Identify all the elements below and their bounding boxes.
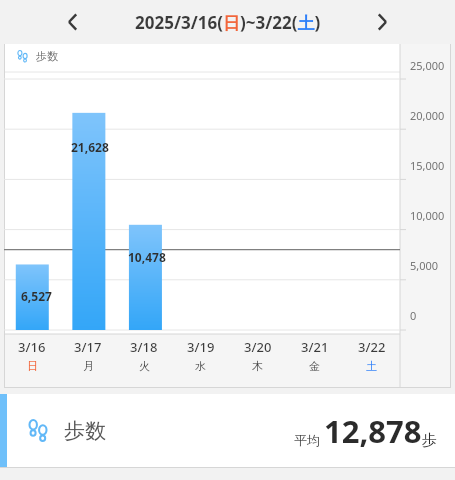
staticText: 歩数: [36, 49, 58, 63]
button[interactable]: 歩数: [0, 394, 455, 468]
staticText: 土: [366, 359, 377, 373]
staticText: 3/16: [18, 338, 46, 356]
staticText: 12,878: [324, 410, 422, 452]
button[interactable]: 歩数: [16, 49, 58, 63]
staticText: 10,478: [128, 249, 166, 265]
staticText: 木: [252, 359, 263, 373]
staticText: 20,000: [410, 108, 445, 123]
staticText: 平均: [294, 432, 320, 448]
staticText: 3/20: [244, 338, 272, 356]
staticText: 3/18: [130, 338, 158, 356]
button[interactable]: Previous week: [56, 5, 90, 39]
staticText: 25,000: [410, 58, 445, 73]
staticText: 15,000: [410, 158, 445, 173]
staticText: 3/19: [187, 338, 215, 356]
staticText: 21,628: [71, 139, 109, 155]
staticText: 金: [309, 359, 320, 373]
staticText: 歩: [422, 431, 437, 450]
staticText: 2025/3/16(日)~3/22(土): [135, 11, 321, 34]
staticText: 歩数: [64, 418, 106, 444]
staticText: 3/21: [301, 338, 329, 356]
staticText: 3/22: [358, 338, 386, 356]
staticText: 日: [27, 359, 38, 373]
staticText: 10,000: [410, 208, 445, 223]
staticText: 水: [195, 359, 206, 373]
staticText: 0: [410, 308, 417, 323]
button[interactable]: Next week: [365, 5, 399, 39]
staticText: 3/17: [74, 338, 102, 356]
staticText: 6,527: [21, 288, 52, 304]
staticText: 5,000: [410, 258, 439, 273]
staticText: 火: [139, 359, 150, 373]
staticText: 月: [83, 359, 94, 373]
